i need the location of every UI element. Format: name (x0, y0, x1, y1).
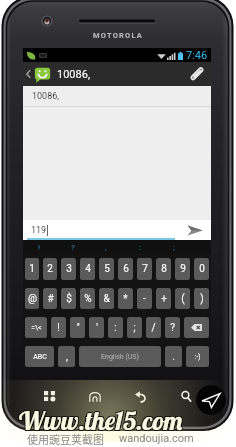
staticText: ' (96, 322, 98, 334)
button[interactable]: ! (51, 317, 66, 338)
button[interactable]: 8 (156, 258, 171, 280)
button[interactable]: Back (23, 62, 211, 86)
button[interactable]: 3 (61, 258, 76, 280)
button[interactable]: * (118, 288, 133, 309)
button[interactable]: Send (179, 220, 211, 240)
staticText: - (143, 293, 146, 305)
staticText: 5 (104, 263, 110, 275)
button[interactable]: / (146, 317, 161, 338)
staticText: $ (66, 293, 72, 305)
staticText: :-) (194, 353, 201, 361)
button[interactable]: 119 (23, 220, 179, 240)
button[interactable]: : (123, 240, 157, 254)
staticText: 6 (123, 263, 129, 275)
staticText: + (161, 293, 167, 305)
staticText: Www.the15.com (19, 404, 183, 437)
staticText: , (66, 351, 68, 363)
button[interactable]: Attach (184, 62, 210, 86)
staticText: ) (200, 293, 204, 305)
staticText: 8 (161, 263, 167, 275)
staticText: Www.the15.com (18, 403, 182, 436)
staticText: 1 (29, 263, 35, 275)
staticText: ABC (33, 353, 47, 361)
staticText: ( (181, 293, 185, 305)
button[interactable]: 9 (175, 258, 190, 280)
button[interactable]: ' (89, 317, 104, 338)
staticText: : (114, 322, 117, 334)
button[interactable]: ; (157, 240, 191, 254)
staticText: 10086, (57, 68, 91, 81)
staticText: . (172, 351, 175, 363)
button[interactable]: ABC (25, 346, 54, 367)
button[interactable]: 7 (137, 258, 152, 280)
staticText: 7 (142, 263, 148, 275)
staticText: * (123, 293, 128, 305)
staticText: 4 (85, 263, 91, 275)
staticText: =\< (31, 324, 42, 332)
staticText: 7:46 (186, 49, 208, 62)
button[interactable]: ? (56, 240, 89, 254)
button[interactable]: Backspace (184, 317, 209, 338)
button[interactable]: - (137, 288, 152, 309)
staticText: English (US) (101, 353, 139, 361)
staticText: Www.the15.com (19, 403, 183, 436)
button[interactable]: ( (175, 288, 190, 309)
staticText: 9 (180, 263, 186, 275)
staticText: / (151, 322, 156, 334)
staticText: ; (173, 243, 175, 252)
staticText: 119 (31, 225, 47, 236)
staticText: , (105, 243, 107, 252)
staticText: ! (38, 243, 41, 252)
staticText: 使用豌豆荚截图 (27, 431, 104, 447)
staticText: Www.the15.com (18, 405, 182, 438)
button[interactable]: # (43, 288, 57, 309)
staticText: 3 (66, 263, 72, 275)
button[interactable]: . (165, 346, 182, 367)
staticText: % (84, 293, 92, 305)
button[interactable]: , (58, 346, 75, 367)
staticText: Www.the15.com (20, 405, 184, 438)
button[interactable]: & (99, 288, 114, 309)
button[interactable]: @ (25, 288, 39, 309)
staticText: 2 (47, 263, 53, 275)
staticText: @ (28, 293, 37, 305)
button[interactable]: ; (127, 317, 142, 338)
staticText: ? (71, 243, 75, 252)
staticText: Www.the15.com (20, 404, 184, 437)
staticText: " (76, 322, 80, 334)
button[interactable]: 6 (118, 258, 133, 280)
button[interactable]: 0 (194, 258, 209, 280)
staticText: 0 (199, 263, 205, 275)
button[interactable]: + (156, 288, 171, 309)
button[interactable]: Search (177, 387, 195, 405)
other: Back (26, 69, 31, 79)
button[interactable]: ) (194, 288, 209, 309)
staticText: Www.the15.com (20, 403, 184, 436)
button[interactable]: : (108, 317, 123, 338)
button[interactable]: 2 (43, 258, 57, 280)
button[interactable]: Wandoujia (196, 385, 226, 415)
staticText: ! (57, 322, 60, 334)
button[interactable]: 4 (80, 258, 95, 280)
staticText: Www.the15.com (18, 404, 182, 437)
button[interactable]: :-) (186, 346, 209, 367)
button[interactable]: " (70, 317, 85, 338)
button[interactable]: 1 (25, 258, 39, 280)
button[interactable]: ! (23, 240, 56, 254)
button[interactable]: 10086, (23, 86, 211, 107)
button[interactable]: =\< (25, 317, 47, 338)
button[interactable]: English (US) (79, 346, 161, 367)
button[interactable]: ? (165, 317, 180, 338)
staticText: 10086, (32, 91, 60, 102)
button[interactable]: , (89, 240, 123, 254)
button[interactable]: Home (86, 387, 104, 405)
button[interactable]: 5 (99, 258, 114, 280)
button[interactable]: $ (61, 288, 76, 309)
button[interactable]: Back (132, 387, 150, 405)
staticText: : (139, 243, 141, 252)
staticText: ; (133, 322, 136, 334)
staticText: Www.the15.com (19, 405, 183, 438)
staticText: ? (170, 322, 175, 334)
button[interactable]: % (80, 288, 95, 309)
button[interactable]: Menu (40, 387, 58, 405)
